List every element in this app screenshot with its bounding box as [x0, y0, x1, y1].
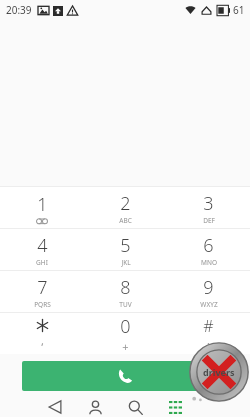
button[interactable]: 0 [84, 313, 167, 354]
button[interactable]: 1 [0, 187, 84, 228]
staticText: 5 [120, 233, 131, 258]
staticText: 2 [120, 191, 131, 216]
button[interactable]: Call [22, 361, 228, 391]
button[interactable]: , [0, 313, 84, 354]
staticText: 20:39 [6, 3, 32, 17]
staticText: WXYZ [200, 300, 218, 309]
staticText: GHI [36, 258, 48, 267]
staticText: + [122, 339, 129, 354]
button[interactable]: 7 [0, 271, 84, 312]
staticText: ; [207, 337, 210, 352]
button[interactable]: 4 [0, 229, 84, 270]
button[interactable]: 3 [167, 187, 250, 228]
staticText: 8 [120, 275, 131, 300]
button[interactable]: Contacts [80, 397, 110, 417]
staticText: 9 [203, 275, 214, 300]
button[interactable]: 9 [167, 271, 250, 312]
button[interactable]: 5 [84, 229, 167, 270]
staticText: 4 [37, 233, 48, 258]
button[interactable]: 8 [84, 271, 167, 312]
button[interactable]: 6 [167, 229, 250, 270]
staticText: 6 [203, 233, 214, 258]
button[interactable]: 2 [84, 187, 167, 228]
button[interactable]: Back [40, 397, 70, 417]
staticText: 7 [37, 275, 48, 300]
button[interactable]: Search [120, 397, 150, 417]
staticText: JKL [121, 258, 131, 267]
staticText: 0 [120, 314, 131, 339]
button[interactable]: # [167, 313, 250, 354]
staticText: PQRS [34, 300, 51, 309]
button[interactable]: Dialpad [160, 397, 190, 417]
staticText: , [41, 333, 44, 348]
staticText: DEF [203, 216, 215, 225]
staticText: ABC [119, 216, 132, 225]
staticText: TUV [119, 300, 132, 309]
staticText: 1 [37, 192, 48, 217]
staticText: 61 [233, 3, 245, 17]
staticText: MNO [201, 258, 217, 267]
staticText: # [203, 315, 214, 337]
staticText: drivers [203, 366, 235, 378]
staticText: 3 [203, 191, 214, 216]
